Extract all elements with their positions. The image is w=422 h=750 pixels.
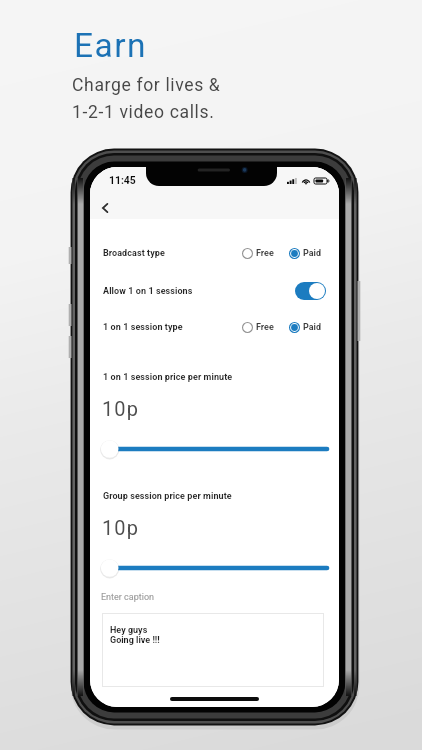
staticText: 10p (102, 516, 140, 539)
staticText: Enter caption (101, 592, 154, 603)
button[interactable]: Free (242, 322, 274, 333)
button[interactable]: 1 on 1 session type (90, 315, 339, 339)
staticText: Broadcast type (103, 248, 165, 259)
button[interactable]: Allow 1 on 1 sessions (295, 282, 326, 300)
button[interactable]: Paid (289, 322, 322, 333)
button[interactable]: Price slider (100, 558, 329, 578)
staticText: Earn (74, 26, 148, 65)
staticText: 1-2-1 video calls. (72, 102, 215, 123)
staticText: 1 on 1 session price per minute (103, 372, 233, 383)
staticText: Hey guys (110, 625, 148, 636)
staticText: Charge for lives & (72, 75, 221, 96)
button[interactable]: Allow 1 on 1 sessions (90, 279, 339, 303)
staticText: Paid (303, 248, 322, 259)
staticText: Allow 1 on 1 sessions (103, 286, 193, 297)
staticText: Paid (303, 322, 322, 333)
staticText: Group session price per minute (103, 491, 232, 502)
button[interactable]: Hey guys (102, 613, 324, 687)
button[interactable]: Free (242, 248, 274, 259)
staticText: 10p (102, 397, 140, 420)
button[interactable]: Paid (289, 248, 322, 259)
button[interactable]: Broadcast type (90, 241, 339, 265)
staticText: Free (256, 248, 274, 259)
staticText: Free (256, 322, 274, 333)
button[interactable]: Price slider (100, 439, 329, 459)
button[interactable]: Back (93, 196, 117, 220)
staticText: 11:45 (109, 174, 136, 186)
staticText: 1 on 1 session type (103, 322, 183, 333)
staticText: Going live !!! (110, 635, 160, 646)
